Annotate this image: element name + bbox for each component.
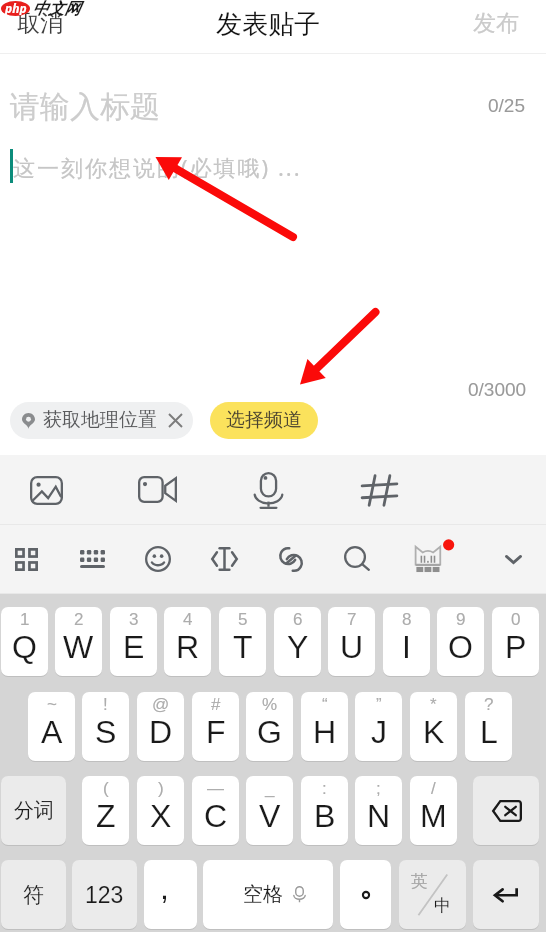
button[interactable]: 3 [110,607,157,676]
staticText: E [123,629,145,665]
button[interactable]: 取消 [0,1,73,46]
button[interactable]: 符 [1,860,66,929]
button[interactable]: Period [340,860,391,929]
button[interactable]: Search [344,546,370,571]
button[interactable]: Enter [473,860,539,929]
button[interactable]: * [410,692,457,761]
staticText: 5 [238,610,248,629]
button[interactable]: @ [137,692,184,761]
staticText: G [257,714,282,750]
button[interactable]: 2 [55,607,102,676]
button[interactable]: Add image [30,476,63,505]
button[interactable]: ( [82,776,129,845]
button[interactable]: # [192,692,239,761]
staticText: ” [376,695,382,714]
staticText: 分词 [14,798,54,823]
staticText: ( [103,779,109,798]
button[interactable]: / [410,776,457,845]
staticText: N [367,798,391,834]
staticText: 0/25 [488,95,525,116]
staticText: php [5,0,27,15]
button[interactable]: 0 [492,607,539,676]
staticText: % [262,695,278,714]
staticText: L [480,714,498,750]
button[interactable]: Move cursor [211,547,238,571]
button[interactable]: 8 [383,607,430,676]
staticText: 3 [129,610,139,629]
staticText: 123 [85,882,124,908]
button[interactable]: 123 [72,860,137,929]
staticText: T [233,629,253,665]
button[interactable]: “ [301,692,348,761]
button[interactable]: Backspace [473,776,539,845]
staticText: ! [103,695,108,714]
staticText: 4 [183,610,193,629]
button[interactable]: Link [279,547,303,572]
staticText: ~ [47,695,57,714]
staticText: _ [265,779,275,798]
staticText: * [430,695,437,714]
button[interactable]: 分词 [1,776,66,845]
staticText: M [420,798,447,834]
staticText: ; [376,779,381,798]
button[interactable]: 1 [1,607,48,676]
button[interactable]: ; [355,776,402,845]
button[interactable]: ) [137,776,184,845]
button[interactable]: _ [246,776,293,845]
button[interactable]: 9 [437,607,484,676]
staticText: , [160,870,169,906]
staticText: H [313,714,337,750]
button[interactable]: Emoji [145,546,171,572]
button[interactable]: 6 [274,607,321,676]
button[interactable]: 4 [164,607,211,676]
staticText: 中文网 [32,0,80,19]
staticText: 取消 [17,9,63,38]
staticText: J [371,714,387,750]
staticText: 英 [411,871,428,892]
button[interactable]: Voice input [252,472,285,509]
staticText: 8 [402,610,412,629]
button[interactable]: 7 [328,607,375,676]
button[interactable]: 发布 [463,1,546,46]
button[interactable]: ~ [28,692,75,761]
button[interactable]: Add video [138,476,177,503]
staticText: “ [322,695,328,714]
button[interactable]: 选择频道 [210,402,318,439]
button[interactable]: ! [82,692,129,761]
button[interactable]: Festival [414,541,455,573]
staticText: : [322,779,327,798]
button[interactable]: , [144,860,197,929]
button[interactable]: Collapse keyboard [505,555,522,564]
button[interactable]: — [192,776,239,845]
button[interactable]: ” [355,692,402,761]
staticText: 6 [293,610,303,629]
staticText: ) [158,779,164,798]
button[interactable]: 5 [219,607,266,676]
button[interactable]: Keyboard [80,550,105,568]
button[interactable]: 空格 [203,860,333,929]
staticText: Y [287,629,309,665]
button[interactable]: : [301,776,348,845]
button[interactable]: ? [465,692,512,761]
staticText: 请输入标题 [10,88,160,126]
staticText: ? [484,695,494,714]
staticText: # [211,695,221,714]
staticText: 空格 [243,882,283,907]
staticText: 发布 [473,9,519,38]
staticText: D [149,714,173,750]
button[interactable]: Add topic [361,474,398,507]
staticText: O [448,629,473,665]
staticText: 选择频道 [226,408,302,432]
staticText: 发表贴子 [216,8,320,41]
button[interactable]: Switch English Chinese [399,860,466,929]
staticText: 0/3000 [468,379,527,400]
button[interactable]: 获取地理位置 [10,402,193,439]
staticText: @ [152,695,170,714]
button[interactable]: Apps [15,548,38,571]
button[interactable]: % [246,692,293,761]
staticText: — [207,779,224,798]
staticText: 2 [74,610,84,629]
staticText: A [41,714,63,750]
staticText: F [206,714,226,750]
staticText: S [95,714,117,750]
